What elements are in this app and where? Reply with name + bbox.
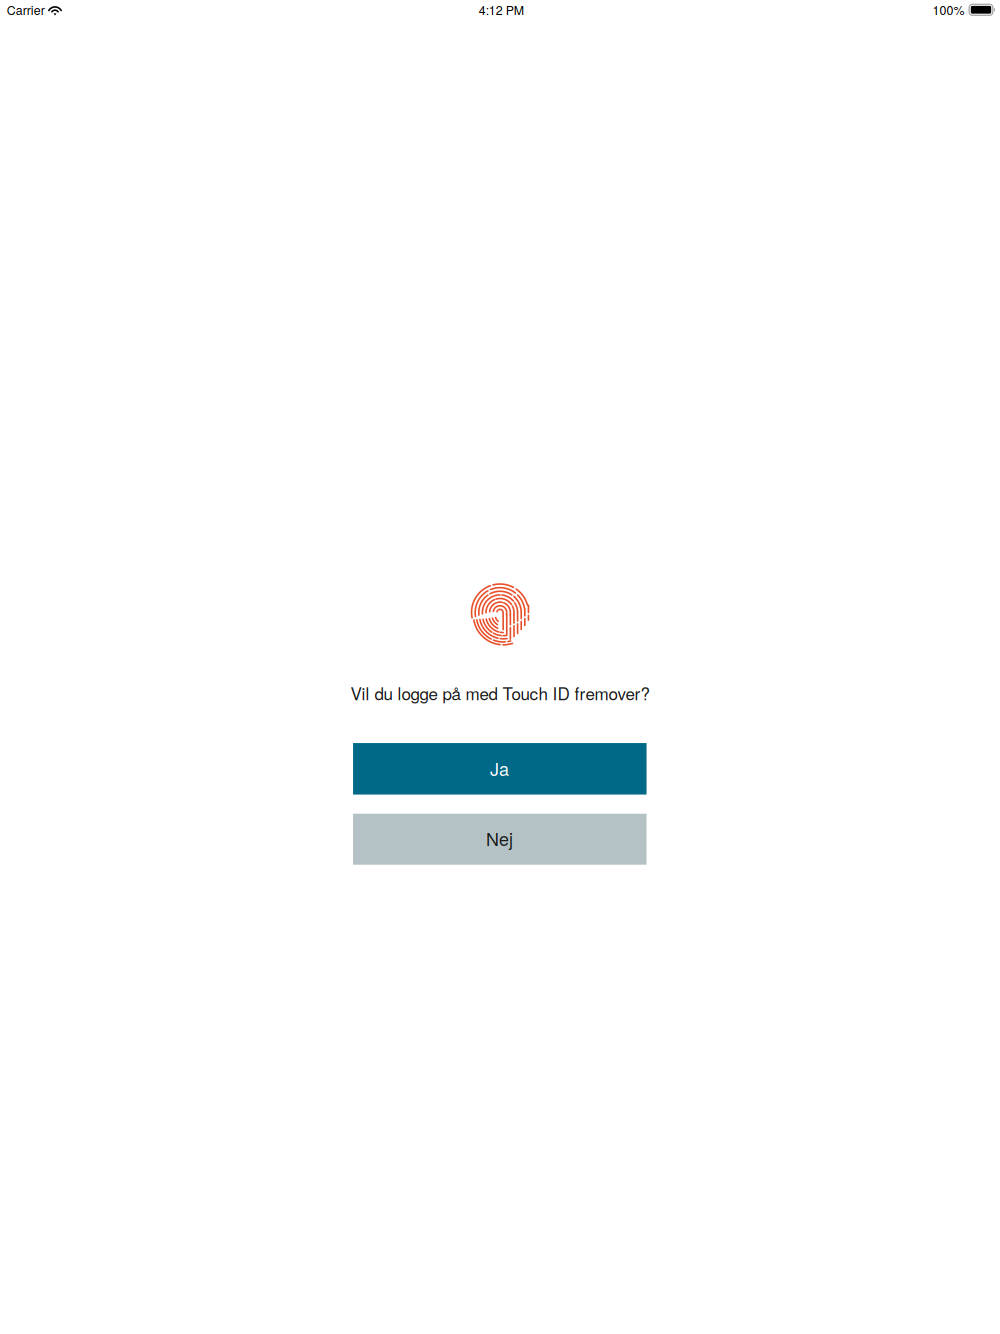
- staticText: 4:12 PM: [479, 1, 524, 18]
- button[interactable]: Ja: [353, 743, 647, 794]
- staticText: Nej: [486, 825, 513, 851]
- staticText: Carrier: [7, 1, 45, 18]
- staticText: Vil du logge på med Touch ID fremover?: [350, 681, 649, 705]
- staticText: 100%: [932, 1, 964, 18]
- staticText: Ja: [490, 755, 509, 781]
- button[interactable]: Nej: [353, 814, 647, 865]
